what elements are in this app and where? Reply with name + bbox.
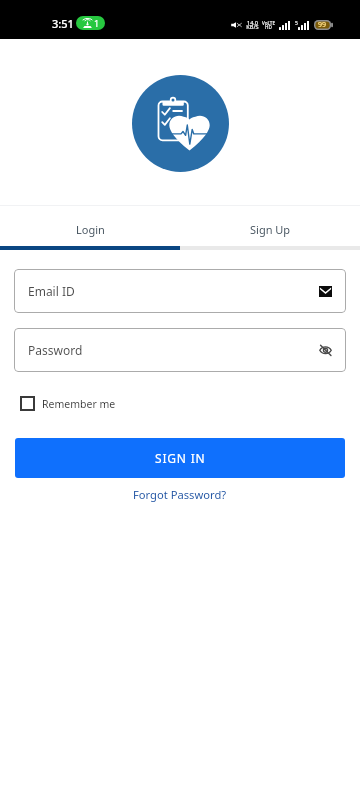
button[interactable]: Sign Up (180, 206, 360, 246)
staticText: Sign Up (250, 222, 291, 237)
button[interactable]: Email ID (14, 269, 346, 313)
button[interactable]: Password (14, 328, 346, 372)
staticText: 14.0 KB/S (246, 19, 259, 31)
staticText: Email ID (28, 283, 319, 299)
staticText: SIGN IN (155, 450, 206, 466)
button[interactable]: SIGN IN (15, 438, 345, 478)
staticText: 3:51 (52, 16, 74, 31)
staticText: Login (76, 222, 105, 237)
staticText: Remember me (42, 397, 116, 411)
staticText: 5 (295, 20, 298, 27)
other: Show password (319, 344, 332, 356)
staticText: 99 (318, 20, 327, 30)
other: Email (319, 286, 332, 297)
staticText: 1 (94, 17, 100, 29)
staticText: VoLTE HD (262, 20, 275, 31)
button[interactable]: Forgot Password? (125, 484, 235, 505)
button[interactable]: Remember me (20, 396, 116, 411)
staticText: Password (28, 342, 319, 358)
button[interactable]: Login (0, 206, 180, 246)
